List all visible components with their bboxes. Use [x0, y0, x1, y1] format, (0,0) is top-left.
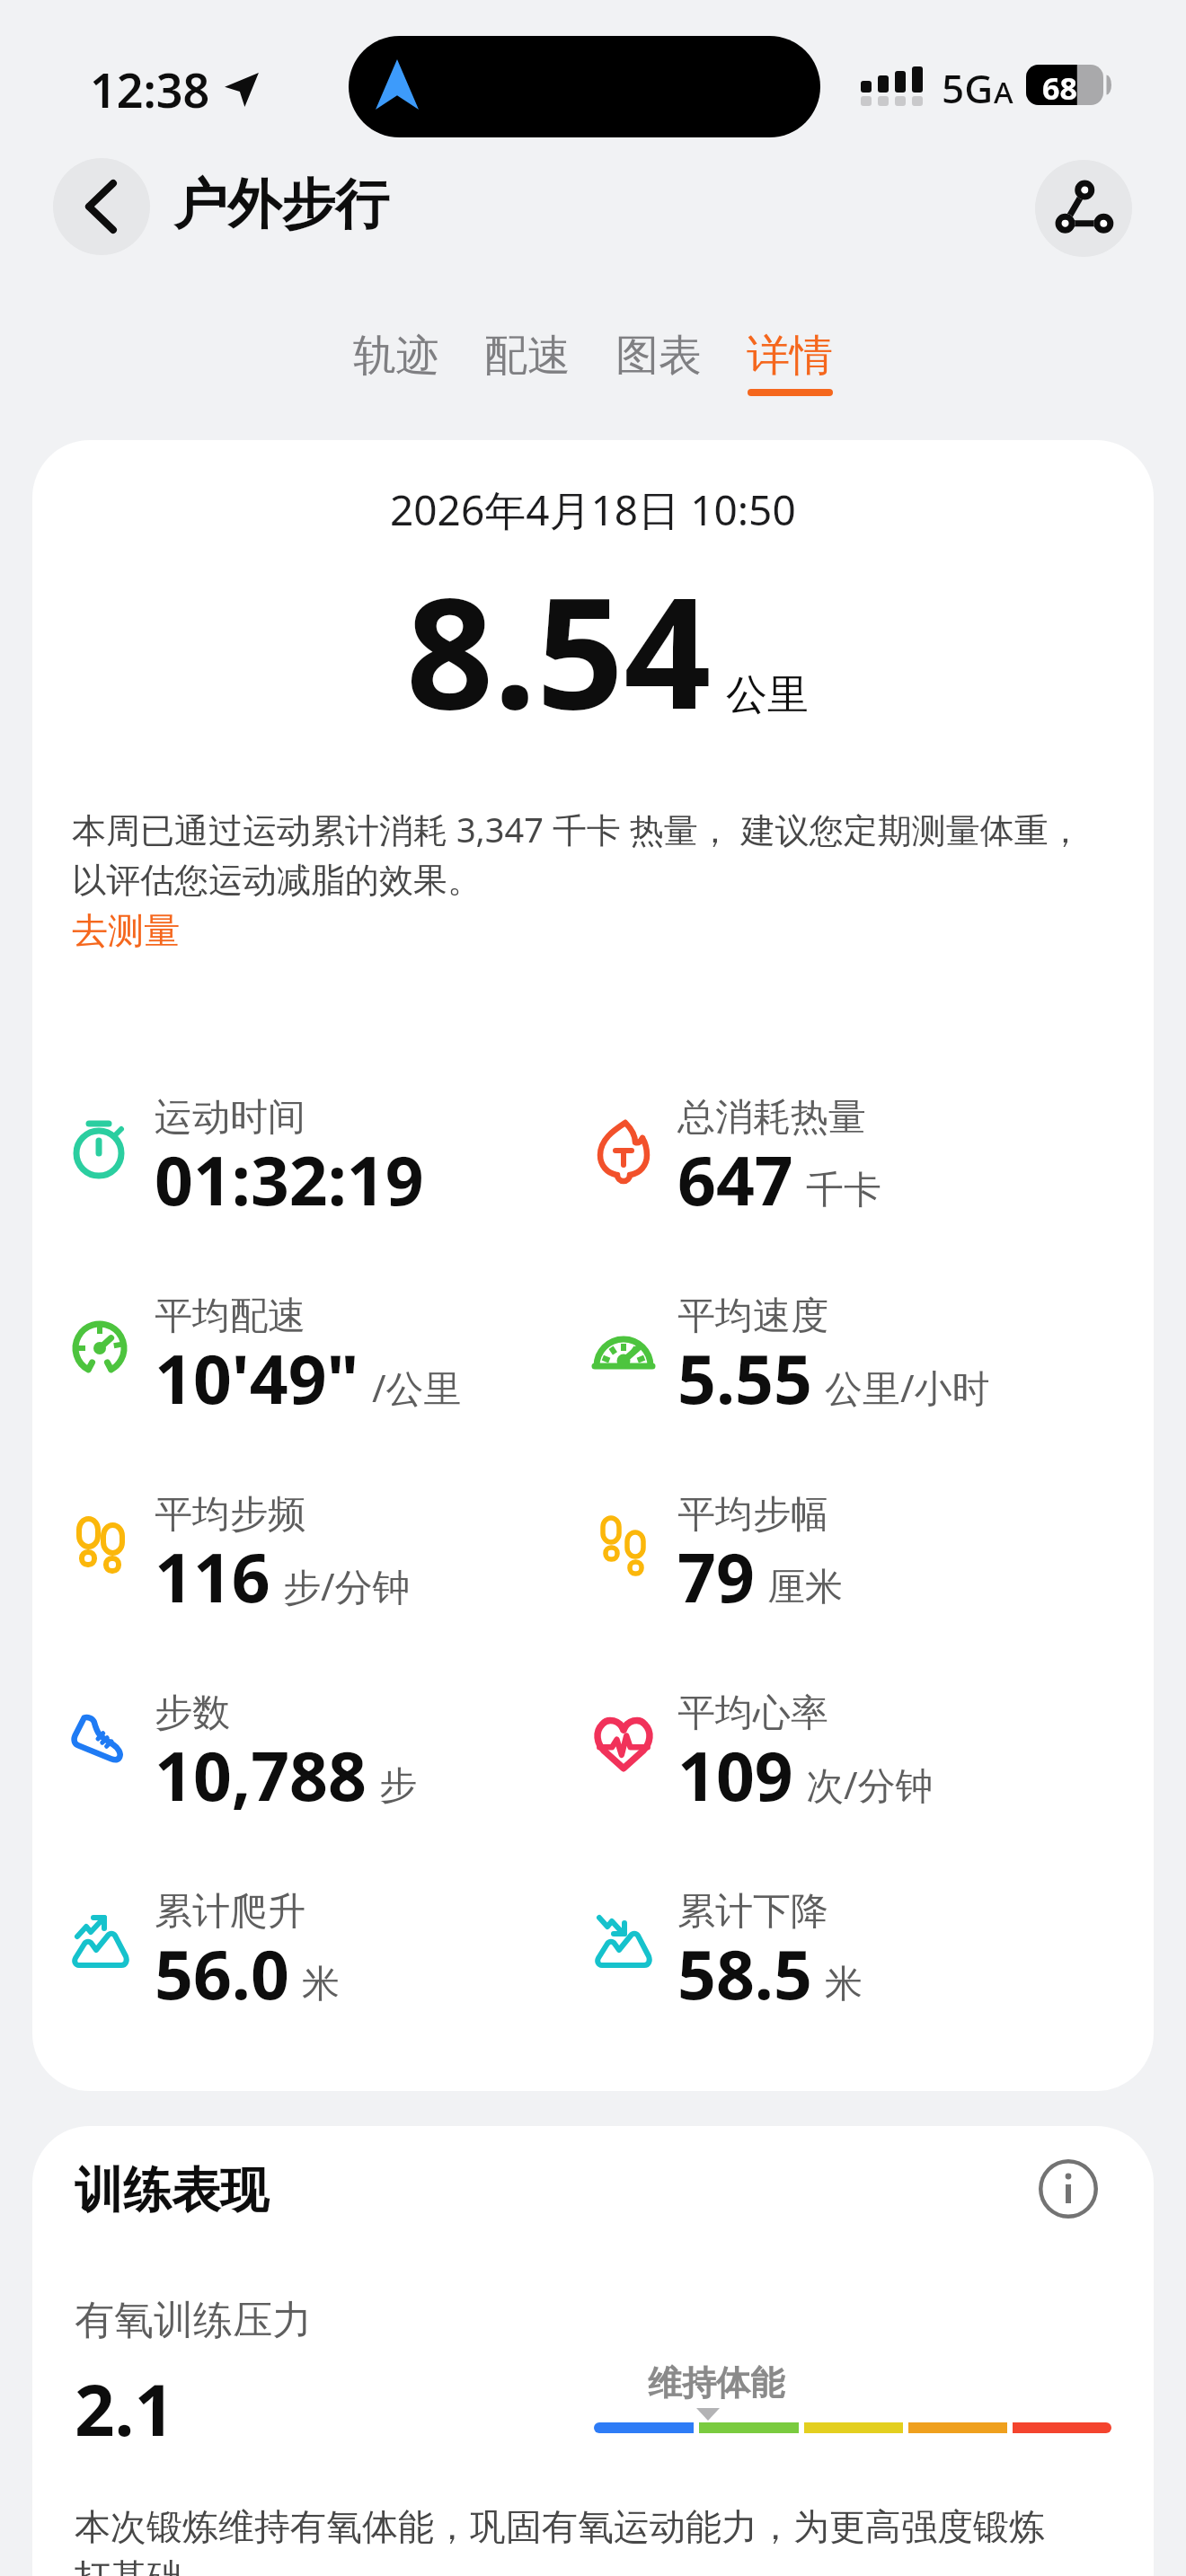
button[interactable]: 累计下降 [595, 1888, 863, 2031]
staticText: 轨迹 [353, 329, 439, 383]
staticText: 累计下降 [677, 1888, 828, 1936]
button[interactable]: 详情 [747, 329, 833, 396]
button[interactable]: 运动时间 [72, 1094, 595, 1237]
staticText: A [994, 72, 1013, 112]
staticText: 配速 [484, 329, 571, 383]
staticText: 千卡 [806, 1167, 881, 1214]
button[interactable]: 平均速度 [595, 1292, 990, 1435]
button[interactable]: 平均步频 [72, 1491, 595, 1634]
button[interactable]: 步数 [72, 1689, 595, 1832]
staticText: 去测量 [72, 908, 180, 953]
staticText: 本周已通过运动累计消耗 3,347 千卡 热量， 建议您定期测量体重， 以评估您… [72, 806, 1083, 902]
staticText: 图表 [615, 329, 702, 383]
staticText: 平均步幅 [677, 1491, 828, 1539]
staticText: 运动时间 [155, 1094, 305, 1142]
staticText: 详情 [747, 329, 833, 383]
button[interactable]: 平均步幅 [595, 1491, 843, 1634]
staticText: 12:38 [90, 57, 210, 121]
staticText: 5G [942, 61, 994, 115]
staticText: 本次锻炼维持有氧体能，巩固有氧运动能力，为更高强度锻炼 打基础 [75, 2504, 1108, 2576]
staticText: 647 [677, 1134, 793, 1225]
staticText: 58.5 [677, 1928, 812, 2019]
staticText: 2026年4月18日 10:50 [390, 481, 796, 538]
staticText: 8.54 [406, 545, 712, 754]
button[interactable]: 去测量 [72, 908, 180, 953]
button[interactable]: 平均配速 [72, 1292, 595, 1435]
button[interactable] [1035, 160, 1132, 257]
staticText: 79 [677, 1531, 755, 1622]
staticText: 有氧训练压力 [75, 2296, 312, 2345]
staticText: 2.1 [75, 2361, 175, 2457]
staticText: 平均心率 [677, 1689, 828, 1737]
button[interactable]: 总消耗热量 [595, 1094, 881, 1237]
staticText: 步/分钟 [283, 1560, 411, 1611]
staticText: 厘米 [767, 1564, 843, 1611]
staticText: 次/分钟 [806, 1759, 934, 1810]
staticText: 10,788 [155, 1729, 367, 1821]
staticText: 训练表现 [75, 2160, 269, 2221]
button[interactable]: 平均心率 [595, 1689, 934, 1832]
button[interactable] [1039, 2159, 1098, 2219]
button[interactable]: 累计爬升 [72, 1888, 595, 2031]
staticText: 维持体能 [648, 2361, 784, 2404]
staticText: 总消耗热量 [677, 1094, 866, 1142]
staticText: 10'49" [155, 1332, 359, 1424]
staticText: 平均速度 [677, 1292, 828, 1340]
staticText: 户外步行 [173, 171, 389, 239]
button[interactable] [53, 158, 150, 255]
button[interactable]: 配速 [484, 329, 571, 396]
staticText: 公里/小时 [825, 1362, 990, 1413]
staticText: 68 [1042, 67, 1077, 109]
button[interactable]: 轨迹 [353, 329, 439, 396]
staticText: 公里 [726, 669, 809, 721]
button[interactable]: 图表 [615, 329, 702, 396]
staticText: 步数 [155, 1689, 230, 1737]
staticText: 109 [677, 1729, 793, 1821]
staticText: 01:32:19 [155, 1134, 424, 1225]
staticText: 米 [302, 1961, 340, 2008]
staticText: 5.55 [677, 1332, 812, 1424]
staticText: 平均配速 [155, 1292, 305, 1340]
staticText: 累计爬升 [155, 1888, 305, 1936]
staticText: 步 [379, 1762, 417, 1810]
staticText: 56.0 [155, 1928, 289, 2019]
staticText: /公里 [372, 1362, 462, 1413]
staticText: 米 [825, 1961, 863, 2008]
staticText: 116 [155, 1531, 270, 1622]
staticText: 平均步频 [155, 1491, 305, 1539]
